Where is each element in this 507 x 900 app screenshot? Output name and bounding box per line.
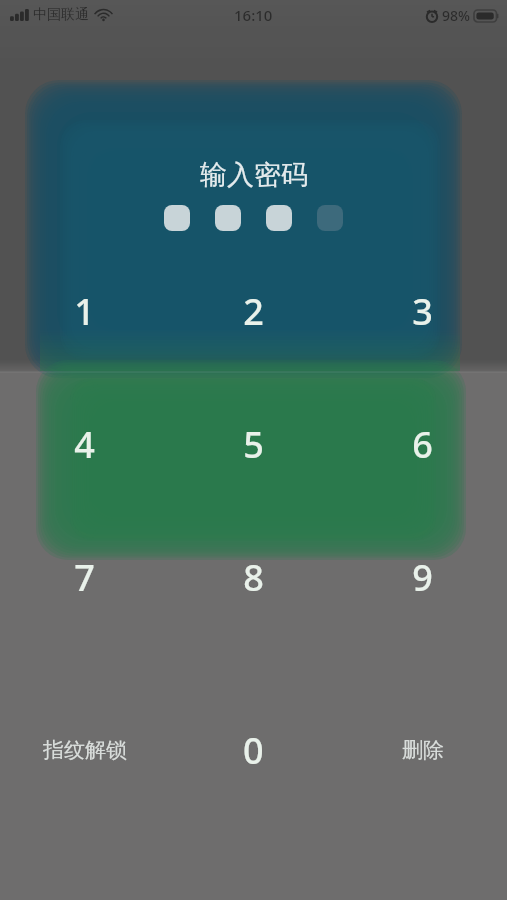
button[interactable]: 1 bbox=[0, 245, 169, 378]
staticText: 9 bbox=[412, 553, 433, 602]
staticText: 删除 bbox=[402, 737, 444, 763]
staticText: 16:10 bbox=[234, 5, 273, 25]
button[interactable]: 5 bbox=[169, 378, 338, 511]
staticText: 4 bbox=[74, 420, 95, 469]
staticText: 6 bbox=[412, 420, 433, 469]
staticText: 3 bbox=[412, 287, 433, 336]
button[interactable]: 2 bbox=[169, 245, 338, 378]
staticText: 7 bbox=[74, 553, 95, 602]
staticText: 输入密码 bbox=[200, 158, 308, 192]
staticText: 中国联通 bbox=[33, 6, 89, 24]
button[interactable]: 3 bbox=[338, 245, 507, 378]
staticText: 2 bbox=[243, 287, 264, 336]
staticText: 8 bbox=[243, 553, 264, 602]
staticText: 5 bbox=[243, 420, 264, 469]
button[interactable]: 6 bbox=[338, 378, 507, 511]
button[interactable]: 4 bbox=[0, 378, 169, 511]
button[interactable]: 指纹解锁 bbox=[0, 644, 169, 900]
button[interactable]: 删除 bbox=[338, 644, 507, 900]
button[interactable]: 9 bbox=[338, 511, 507, 644]
button[interactable]: 8 bbox=[169, 511, 338, 644]
button[interactable]: 7 bbox=[0, 511, 169, 644]
staticText: 98% bbox=[442, 6, 470, 25]
button[interactable]: 0 bbox=[169, 644, 338, 900]
staticText: 指纹解锁 bbox=[43, 737, 127, 763]
staticText: 1 bbox=[74, 287, 95, 336]
staticText: 0 bbox=[243, 726, 264, 775]
